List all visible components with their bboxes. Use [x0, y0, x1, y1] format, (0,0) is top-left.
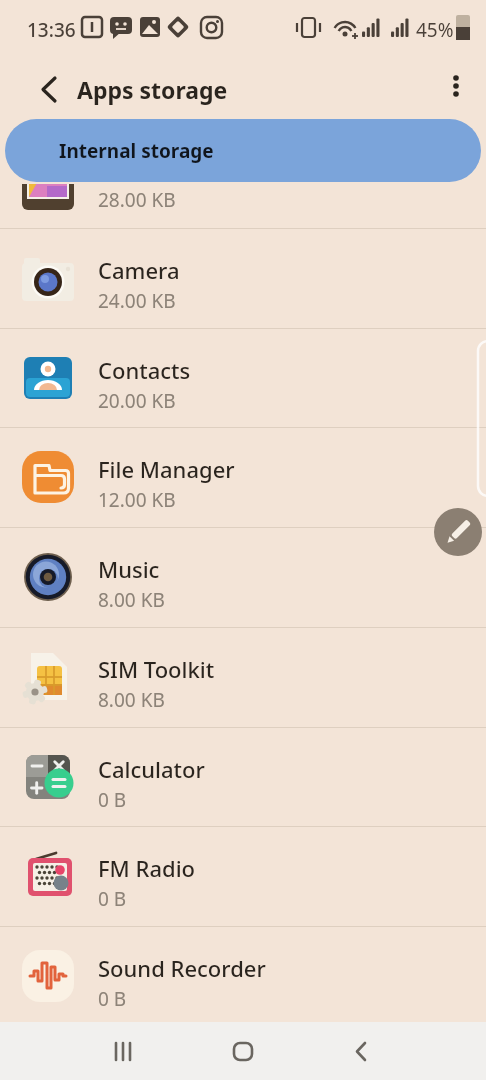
staticText: 12.00 KB [98, 487, 176, 513]
staticText: 24.00 KB [98, 288, 176, 314]
staticText: Internal storage [59, 138, 214, 164]
staticText: Contacts [98, 355, 191, 385]
staticText: Calculator [98, 754, 205, 784]
button[interactable]: FM Radio [0, 826, 486, 926]
staticText: Camera [98, 255, 180, 285]
button[interactable] [99, 1027, 147, 1075]
staticText: 13:36 [27, 17, 76, 43]
staticText: SIM Toolkit [98, 654, 215, 684]
staticText: 45% [416, 17, 454, 43]
button[interactable]: Internal storage [5, 119, 481, 182]
staticText: 8.00 KB [98, 587, 165, 613]
staticText: 20.00 KB [98, 388, 176, 414]
staticText: Music [98, 554, 160, 584]
button[interactable] [337, 1027, 385, 1075]
staticText: 0 B [98, 787, 127, 813]
staticText: 0 B [98, 886, 127, 912]
button[interactable] [434, 508, 482, 556]
staticText: Apps storage [77, 74, 228, 105]
button[interactable]: Contacts [0, 328, 486, 428]
button[interactable]: Music [0, 527, 486, 627]
button[interactable]: Sound Recorder [0, 926, 486, 1026]
button[interactable]: File Manager [0, 427, 486, 527]
staticText: 8.00 KB [98, 687, 165, 713]
button[interactable]: Calculator [0, 727, 486, 827]
button[interactable]: Camera [0, 228, 486, 328]
staticText: Sound Recorder [98, 953, 266, 983]
staticText: FM Radio [98, 853, 196, 883]
button[interactable] [219, 1027, 267, 1075]
staticText: 28.00 KB [98, 187, 176, 213]
staticText: 0 B [98, 986, 127, 1012]
staticText: File Manager [98, 454, 235, 484]
button[interactable] [438, 68, 474, 104]
button[interactable] [30, 74, 66, 110]
button[interactable]: SIM Toolkit [0, 627, 486, 727]
